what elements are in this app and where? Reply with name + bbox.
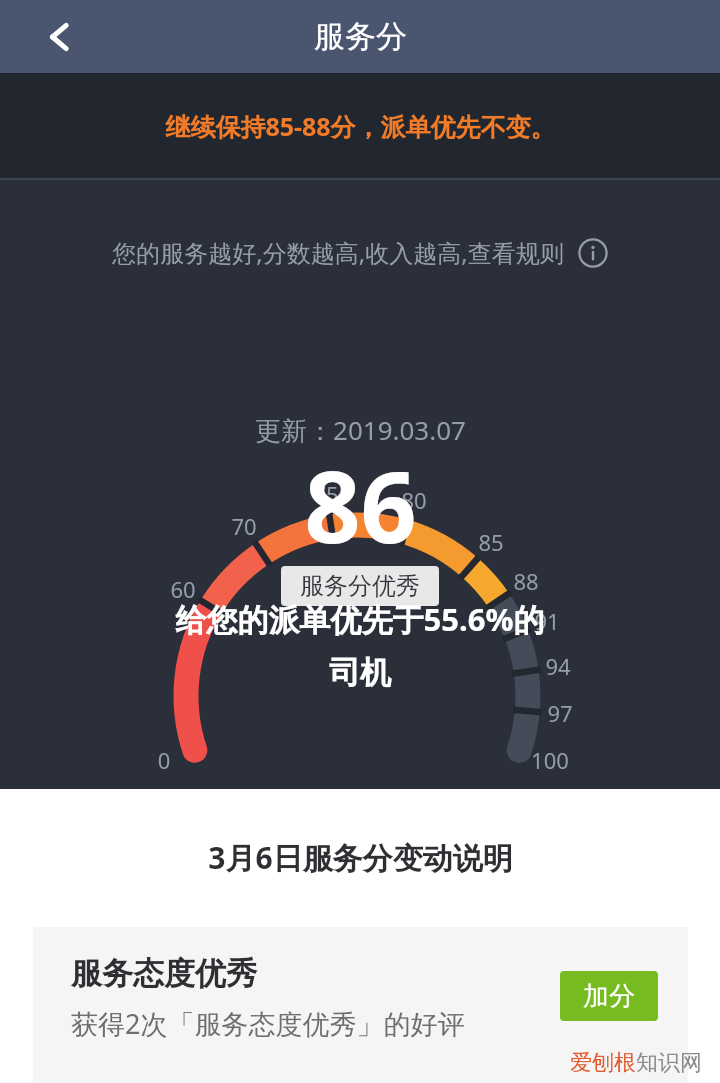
button[interactable]: 您的服务越好,分数越高,收入越高,查看规则	[112, 236, 608, 269]
staticText: 60	[161, 574, 205, 604]
staticText: 97	[538, 698, 582, 728]
staticText: 70	[222, 511, 266, 541]
staticText: 服务分	[314, 17, 407, 56]
other: Info	[578, 238, 608, 268]
staticText: 服务分优秀	[300, 571, 420, 601]
staticText: 获得2次「服务态度优秀」的好评	[71, 1005, 465, 1042]
staticText: 爱刨根	[570, 1049, 636, 1077]
staticText: 更新：2019.03.07	[255, 412, 466, 448]
staticText: 0	[142, 745, 186, 775]
staticText: 100	[528, 745, 572, 775]
staticText: 3月6日服务分变动说明	[208, 837, 513, 878]
staticText: 75	[304, 479, 348, 509]
staticText: 86	[304, 438, 417, 571]
staticText: 给您的派单优先于55.6%的 司机	[100, 598, 620, 692]
staticText: 知识网	[636, 1049, 702, 1077]
staticText: 80	[392, 485, 436, 515]
staticText: 85	[469, 527, 513, 557]
staticText: 您的服务越好,分数越高,收入越高,查看规则	[112, 236, 564, 269]
staticText: 继续保持85-88分，派单优先不变。	[165, 109, 556, 143]
button[interactable]: 服务态度优秀	[33, 927, 688, 1083]
button[interactable]: 加分	[560, 971, 658, 1021]
staticText: 91	[525, 606, 569, 636]
staticText: 88	[504, 566, 548, 596]
button[interactable]: Back	[20, 0, 86, 73]
staticText: 94	[536, 651, 580, 681]
staticText: 服务态度优秀	[71, 954, 257, 993]
staticText: 加分	[583, 980, 635, 1013]
button[interactable]: 服务分优秀	[281, 566, 439, 606]
